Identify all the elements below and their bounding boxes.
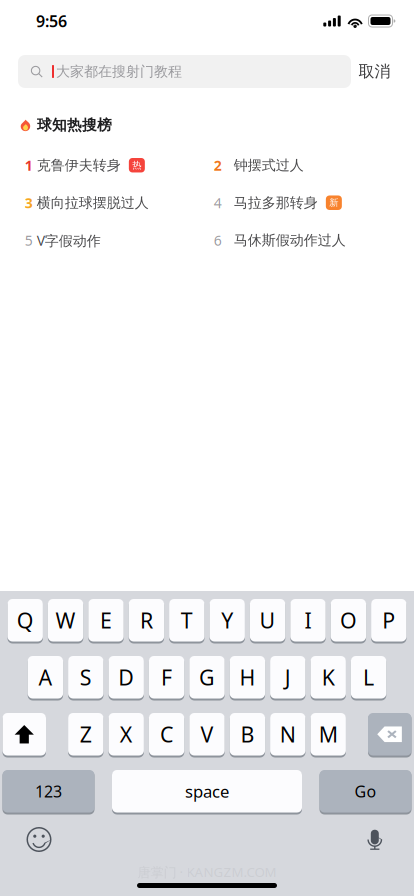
button[interactable]: 2 xyxy=(214,146,394,184)
button[interactable]: 取消 xyxy=(351,55,398,88)
staticText: W xyxy=(56,606,76,635)
button[interactable]: N xyxy=(270,713,305,757)
button[interactable]: C xyxy=(149,713,184,757)
button[interactable]: 1 xyxy=(25,146,214,184)
staticText: 123 xyxy=(35,780,62,802)
staticText: 9:56 xyxy=(36,10,67,32)
button[interactable]: L xyxy=(351,656,386,700)
staticText: J xyxy=(285,663,291,692)
staticText: A xyxy=(38,663,52,692)
button[interactable]: A xyxy=(28,656,63,700)
button[interactable]: X xyxy=(108,713,144,757)
staticText: 5 xyxy=(25,231,33,250)
button[interactable]: P xyxy=(371,599,406,643)
staticText: U xyxy=(260,606,276,635)
staticText: 球知热搜榜 xyxy=(37,116,112,134)
button[interactable]: Emoji keyboard xyxy=(17,819,61,859)
staticText: 热 xyxy=(132,159,141,171)
staticText: C xyxy=(160,720,173,749)
staticText: Y xyxy=(221,606,233,635)
staticText: 新 xyxy=(329,197,338,209)
staticText: P xyxy=(382,606,395,635)
staticText: I xyxy=(304,606,311,635)
staticText: O xyxy=(340,606,357,635)
button[interactable]: W xyxy=(48,599,83,643)
staticText: B xyxy=(240,720,254,749)
staticText: 马休斯假动作过人 xyxy=(234,231,346,249)
staticText: S xyxy=(80,663,92,692)
button[interactable]: F xyxy=(149,656,184,700)
button[interactable]: O xyxy=(331,599,366,643)
staticText: 克鲁伊夫转身 xyxy=(37,156,121,174)
button[interactable]: 4 xyxy=(214,184,394,221)
button[interactable]: Shift xyxy=(2,713,46,757)
staticText: 4 xyxy=(214,193,222,212)
button[interactable]: Dictation xyxy=(353,819,397,859)
staticText: T xyxy=(181,606,193,635)
staticText: K xyxy=(322,663,335,692)
button[interactable]: M xyxy=(310,713,346,757)
staticText: 马拉多那转身 xyxy=(234,194,318,211)
button[interactable]: I xyxy=(290,599,326,643)
button[interactable]: Delete xyxy=(368,713,411,757)
staticText: 2 xyxy=(214,156,222,175)
button[interactable]: G xyxy=(189,656,225,700)
button[interactable]: space xyxy=(112,770,302,814)
button[interactable]: U xyxy=(250,599,285,643)
button[interactable]: Z xyxy=(68,713,103,757)
staticText: N xyxy=(280,720,296,749)
button[interactable]: K xyxy=(310,656,346,700)
staticText: L xyxy=(363,663,374,692)
staticText: Q xyxy=(17,606,34,635)
button[interactable]: 6 xyxy=(214,221,394,259)
button[interactable]: T xyxy=(169,599,204,643)
staticText: 6 xyxy=(214,231,222,250)
button[interactable]: J xyxy=(270,656,305,700)
staticText: 钟摆式过人 xyxy=(234,156,304,174)
staticText: R xyxy=(140,606,153,635)
button[interactable]: R xyxy=(129,599,164,643)
staticText: G xyxy=(199,663,215,692)
staticText: F xyxy=(161,663,172,692)
button[interactable]: E xyxy=(88,599,124,643)
button[interactable]: S xyxy=(68,656,103,700)
staticText: Z xyxy=(80,720,92,749)
button[interactable]: D xyxy=(108,656,144,700)
staticText: 横向拉球摆脱过人 xyxy=(37,194,149,211)
button[interactable]: Go xyxy=(319,770,411,814)
button[interactable]: V xyxy=(189,713,225,757)
button[interactable]: H xyxy=(230,656,265,700)
button[interactable]: Y xyxy=(209,599,245,643)
staticText: V字假动作 xyxy=(37,231,101,250)
staticText: H xyxy=(239,663,255,692)
staticText: 大家都在搜射门教程 xyxy=(56,63,182,80)
staticText: E xyxy=(100,606,112,635)
button[interactable]: B xyxy=(230,713,265,757)
staticText: M xyxy=(319,720,338,749)
staticText: 3 xyxy=(25,193,33,212)
staticText: X xyxy=(120,720,133,749)
button[interactable]: 3 xyxy=(25,184,214,221)
button[interactable]: Q xyxy=(7,599,43,643)
staticText: 唐掌门 · KANGZM.COM xyxy=(137,863,276,881)
staticText: 1 xyxy=(25,156,33,175)
staticText: V xyxy=(200,720,213,749)
staticText: D xyxy=(118,663,134,692)
staticText: space xyxy=(185,780,229,803)
button[interactable]: 123 xyxy=(2,770,94,814)
button[interactable]: 5 xyxy=(25,221,214,259)
staticText: 取消 xyxy=(358,61,390,82)
staticText: Go xyxy=(354,780,376,802)
